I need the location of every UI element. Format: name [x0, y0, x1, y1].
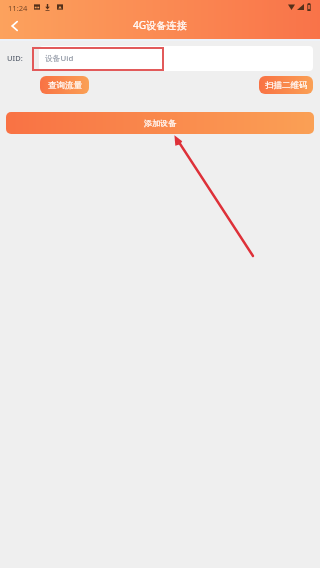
button[interactable]: 设备Uid: [39, 46, 313, 71]
button[interactable]: Back: [3, 14, 26, 37]
staticText: 添加设备: [144, 118, 176, 128]
staticText: 设备Uid: [45, 53, 74, 64]
button[interactable]: 查询流量: [40, 76, 89, 94]
staticText: 查询流量: [48, 80, 82, 91]
button[interactable]: 扫描二维码: [259, 76, 313, 94]
staticText: 4G设备连接: [133, 18, 187, 32]
staticText: 11:24: [8, 3, 28, 13]
button[interactable]: 添加设备: [6, 112, 314, 134]
staticText: 扫描二维码: [265, 80, 308, 91]
staticText: UID:: [7, 53, 23, 63]
